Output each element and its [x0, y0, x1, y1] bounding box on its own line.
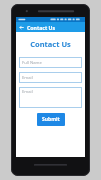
staticText: Submit: [42, 116, 60, 123]
staticText: Full Name: [22, 60, 42, 66]
button[interactable]: Email: [19, 87, 82, 108]
staticText: Email: [22, 89, 33, 95]
staticText: Email: [22, 75, 33, 81]
button[interactable]: Back: [16, 22, 27, 32]
button[interactable]: Submit: [37, 113, 65, 126]
staticText: Contact Us: [19, 39, 82, 49]
staticText: Contact Us: [27, 24, 56, 31]
button[interactable]: Full Name: [19, 57, 82, 68]
button[interactable]: Email: [19, 72, 82, 83]
